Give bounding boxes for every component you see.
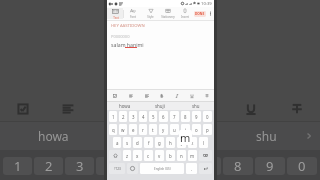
button[interactable]: m [188, 150, 197, 161]
staticText: f [148, 140, 150, 146]
button[interactable]: v [155, 150, 164, 161]
button[interactable]: d [133, 137, 142, 148]
button[interactable]: Format tool 1 [123, 90, 139, 101]
staticText: . [191, 166, 193, 172]
staticText: 0 [298, 157, 306, 175]
button[interactable]: DONE [193, 7, 207, 20]
button[interactable]: p [203, 124, 212, 135]
staticText: Font [130, 15, 136, 19]
button[interactable]: Format tool 0 [107, 90, 123, 101]
button[interactable]: More options [207, 7, 214, 20]
staticText: h [169, 140, 172, 146]
button[interactable]: x [133, 150, 142, 161]
button[interactable]: j [177, 137, 186, 148]
staticText: shu [256, 128, 277, 144]
button[interactable]: 6 [159, 111, 168, 122]
button[interactable]: 0 [203, 111, 212, 122]
staticText: 5 [152, 114, 155, 120]
button[interactable]: Period [186, 163, 197, 174]
staticText: 2 [122, 114, 125, 120]
staticText: 10:39 [201, 1, 212, 7]
button[interactable]: Font [124, 8, 142, 19]
button[interactable]: l [199, 137, 208, 148]
staticText: 6 [162, 114, 165, 120]
button[interactable]: y [159, 124, 168, 135]
staticText: shu [192, 103, 200, 109]
button[interactable]: 4 [139, 111, 147, 122]
staticText: 0 [206, 114, 209, 120]
button[interactable]: n [177, 150, 186, 161]
button[interactable]: Shift [109, 150, 121, 161]
staticText: o [195, 127, 198, 133]
button[interactable]: z [123, 150, 131, 161]
button[interactable]: k [188, 137, 197, 148]
button[interactable]: English (US) [140, 163, 184, 174]
button[interactable]: 1 [109, 111, 117, 122]
button[interactable]: r [139, 124, 147, 135]
staticText: d [136, 140, 139, 146]
button[interactable]: Text [107, 8, 123, 19]
staticText: 3 [132, 114, 135, 120]
button[interactable]: e [129, 124, 137, 135]
button[interactable]: f [144, 137, 153, 148]
button[interactable]: i [181, 124, 190, 135]
staticText: 2 [45, 157, 53, 175]
button[interactable]: Style [142, 8, 159, 19]
button[interactable]: s [123, 137, 131, 148]
staticText: t [152, 127, 154, 133]
staticText: HEY AASTIDOWN [111, 23, 145, 29]
staticText: English (US) [154, 167, 171, 171]
button[interactable]: 2 [119, 111, 127, 122]
button[interactable]: howa [107, 102, 142, 110]
staticText: Insert [181, 15, 189, 19]
button[interactable]: 9 [192, 111, 201, 122]
button[interactable]: a [113, 137, 121, 148]
button[interactable]: 8 [181, 111, 190, 122]
staticText: z [126, 153, 129, 159]
staticText: 9 [266, 157, 274, 175]
button[interactable]: Format tool 6 [199, 90, 214, 101]
button[interactable]: o [192, 124, 201, 135]
staticText: c [147, 153, 150, 159]
button[interactable]: shu [178, 102, 214, 110]
staticText: shuji [146, 128, 173, 144]
button[interactable]: t [149, 124, 157, 135]
button[interactable]: Format tool 3 [154, 90, 169, 101]
button[interactable]: b [166, 150, 175, 161]
button[interactable]: Symbols [109, 163, 125, 174]
button[interactable]: u [170, 124, 179, 135]
button[interactable]: Enter [199, 163, 212, 174]
button[interactable]: c [144, 150, 153, 161]
button[interactable]: Format tool 5 [184, 90, 199, 101]
staticText: 4 [107, 157, 115, 175]
staticText: Stationery [161, 15, 175, 19]
staticText: howa [119, 103, 131, 109]
button[interactable]: Backspace [199, 150, 212, 161]
staticText: a [116, 140, 119, 146]
staticText: e [132, 127, 135, 133]
staticText: q [112, 127, 115, 133]
staticText: P0000000 [111, 34, 130, 39]
button[interactable]: w [119, 124, 127, 135]
staticText: s [126, 140, 129, 146]
button[interactable]: Insert [176, 8, 193, 19]
staticText: m [180, 130, 191, 145]
button[interactable]: Stationery [159, 8, 176, 19]
staticText: 9 [195, 114, 198, 120]
button[interactable]: Emoji [127, 163, 138, 174]
button[interactable]: h [166, 137, 175, 148]
button[interactable]: 5 [149, 111, 157, 122]
button[interactable]: shuji [142, 102, 178, 110]
staticText: j [181, 140, 183, 146]
button[interactable]: 7 [170, 111, 179, 122]
button[interactable]: Format tool 4 [169, 90, 184, 101]
button[interactable]: 3 [129, 111, 137, 122]
button[interactable]: Format tool 2 [139, 90, 154, 101]
button[interactable]: q [109, 124, 117, 135]
staticText: Style [147, 15, 154, 19]
staticText: u [173, 127, 176, 133]
staticText: howa [38, 128, 69, 144]
staticText: 1 [14, 157, 22, 175]
staticText: i [185, 127, 187, 133]
button[interactable]: g [155, 137, 164, 148]
